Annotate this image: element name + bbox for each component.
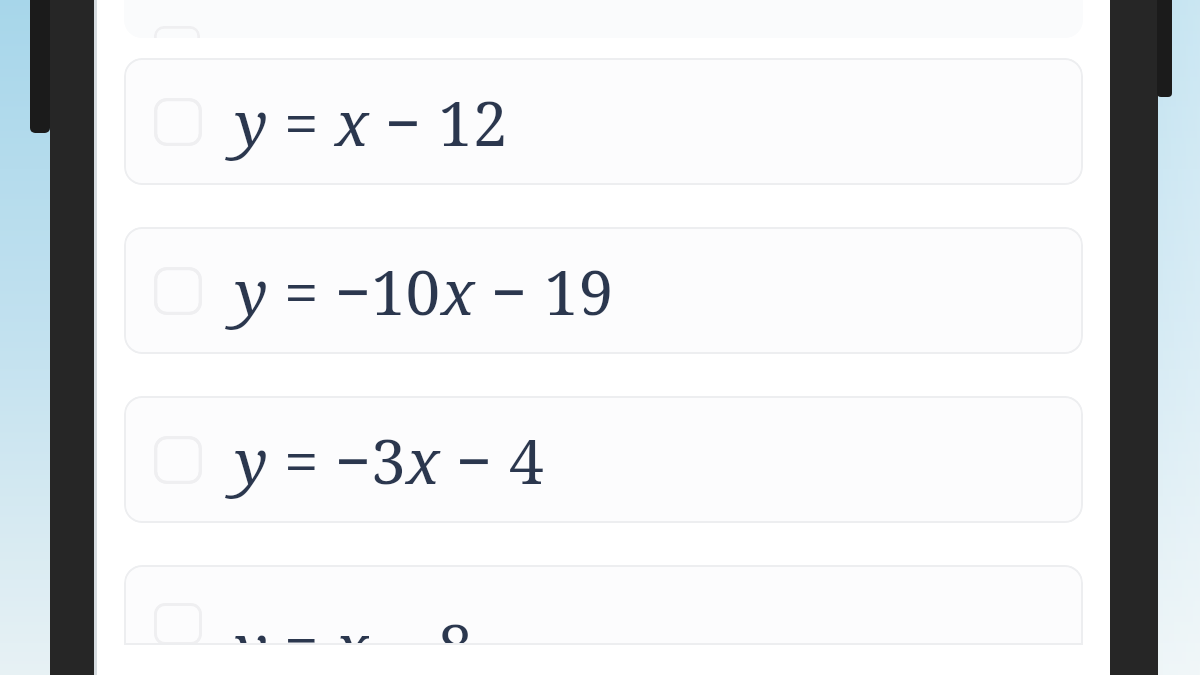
staticText: y xyxy=(235,418,268,502)
button[interactable]: Select this answer xyxy=(124,58,1083,185)
staticText: 4 xyxy=(509,418,544,502)
staticText: 8 xyxy=(438,603,473,645)
button[interactable]: Power button xyxy=(30,0,50,133)
staticText: y xyxy=(235,249,268,333)
staticText: x xyxy=(406,418,440,502)
staticText: x xyxy=(335,80,369,164)
staticText: 19 xyxy=(544,249,614,333)
staticText: = xyxy=(268,249,335,333)
button[interactable]: Select this answer xyxy=(124,227,1083,354)
staticText: − xyxy=(440,418,509,502)
button[interactable]: Select this answer xyxy=(154,98,202,146)
staticText: = xyxy=(268,418,335,502)
staticText: y xyxy=(235,80,268,164)
button[interactable]: Select this answer xyxy=(154,267,202,315)
staticText: − xyxy=(369,603,438,645)
staticText: = xyxy=(268,603,335,645)
staticText: − xyxy=(475,249,544,333)
staticText: = xyxy=(268,80,335,164)
button[interactable]: Select this answer xyxy=(154,603,202,645)
staticText: − xyxy=(369,80,438,164)
button[interactable]: Select this answer xyxy=(154,436,202,484)
staticText: x xyxy=(335,603,369,645)
button[interactable]: Select this answer xyxy=(124,396,1083,523)
staticText: −3 xyxy=(335,418,406,502)
button[interactable]: Volume button xyxy=(1157,0,1172,97)
button[interactable]: Select this answer xyxy=(124,565,1083,645)
staticText: 12 xyxy=(438,80,508,164)
button[interactable]: Select this answer xyxy=(154,26,200,38)
staticText: y xyxy=(235,603,268,645)
staticText: −10 xyxy=(335,249,441,333)
staticText: x xyxy=(441,249,475,333)
